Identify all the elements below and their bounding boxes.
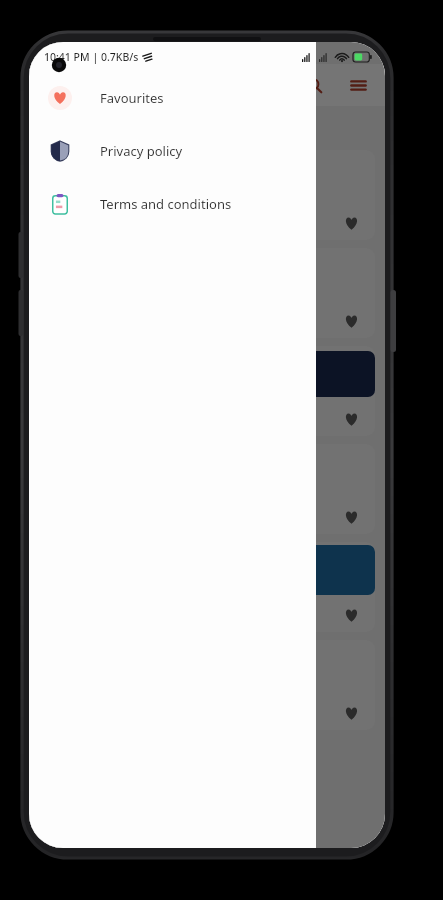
button[interactable]: Favourite Indian Express — [339, 505, 363, 529]
staticText: 10:41 PM | 0.7KB/s — [44, 50, 139, 64]
button[interactable]: Independent — [39, 150, 375, 240]
staticText: Terms and conditions — [100, 195, 232, 213]
button[interactable]: YAHOO! — [39, 248, 375, 338]
button[interactable]: Favourite Hindustan Times — [339, 701, 363, 725]
button[interactable]: Privacy policy — [29, 124, 316, 177]
button[interactable]: Guardian — [39, 346, 375, 436]
staticText: News — [41, 74, 88, 97]
button[interactable]: hindustan — [39, 640, 375, 730]
staticText: Favourites — [100, 89, 164, 107]
button[interactable]: Menu — [343, 70, 373, 100]
button[interactable]: Indian Express — [39, 444, 375, 534]
button[interactable]: Search — [299, 70, 329, 100]
button[interactable]: BBC — [39, 542, 375, 632]
button[interactable]: Favourite Yahoo News — [339, 309, 363, 333]
button[interactable]: Favourite BBC — [339, 603, 363, 627]
button[interactable]: Favourite Independent — [339, 211, 363, 235]
button[interactable]: Terms and conditions — [29, 177, 316, 230]
staticText: Privacy policy — [100, 142, 183, 160]
button[interactable]: Favourites — [29, 71, 316, 124]
button[interactable]: Favourite Guardian — [339, 407, 363, 431]
